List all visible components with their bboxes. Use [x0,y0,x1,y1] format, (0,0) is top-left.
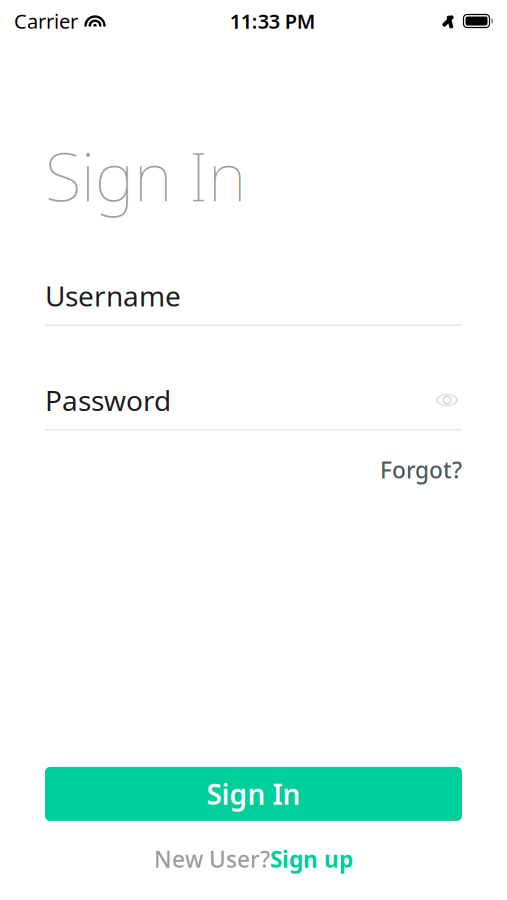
staticText: Sign In [206,775,300,812]
staticText: Password [45,381,171,419]
button[interactable]: New User? [154,840,353,878]
staticText: Username [45,277,181,314]
button[interactable]: Sign In [45,767,462,821]
staticText: Sign In [45,131,246,219]
staticText: Forgot? [380,454,462,485]
button[interactable]: Show password [432,387,462,413]
staticText: Sign up [270,844,353,874]
staticText: Carrier [14,8,78,34]
button[interactable]: Forgot? [380,450,462,489]
staticText: 11:33 PM [230,8,316,34]
staticText: New User? [154,844,270,874]
